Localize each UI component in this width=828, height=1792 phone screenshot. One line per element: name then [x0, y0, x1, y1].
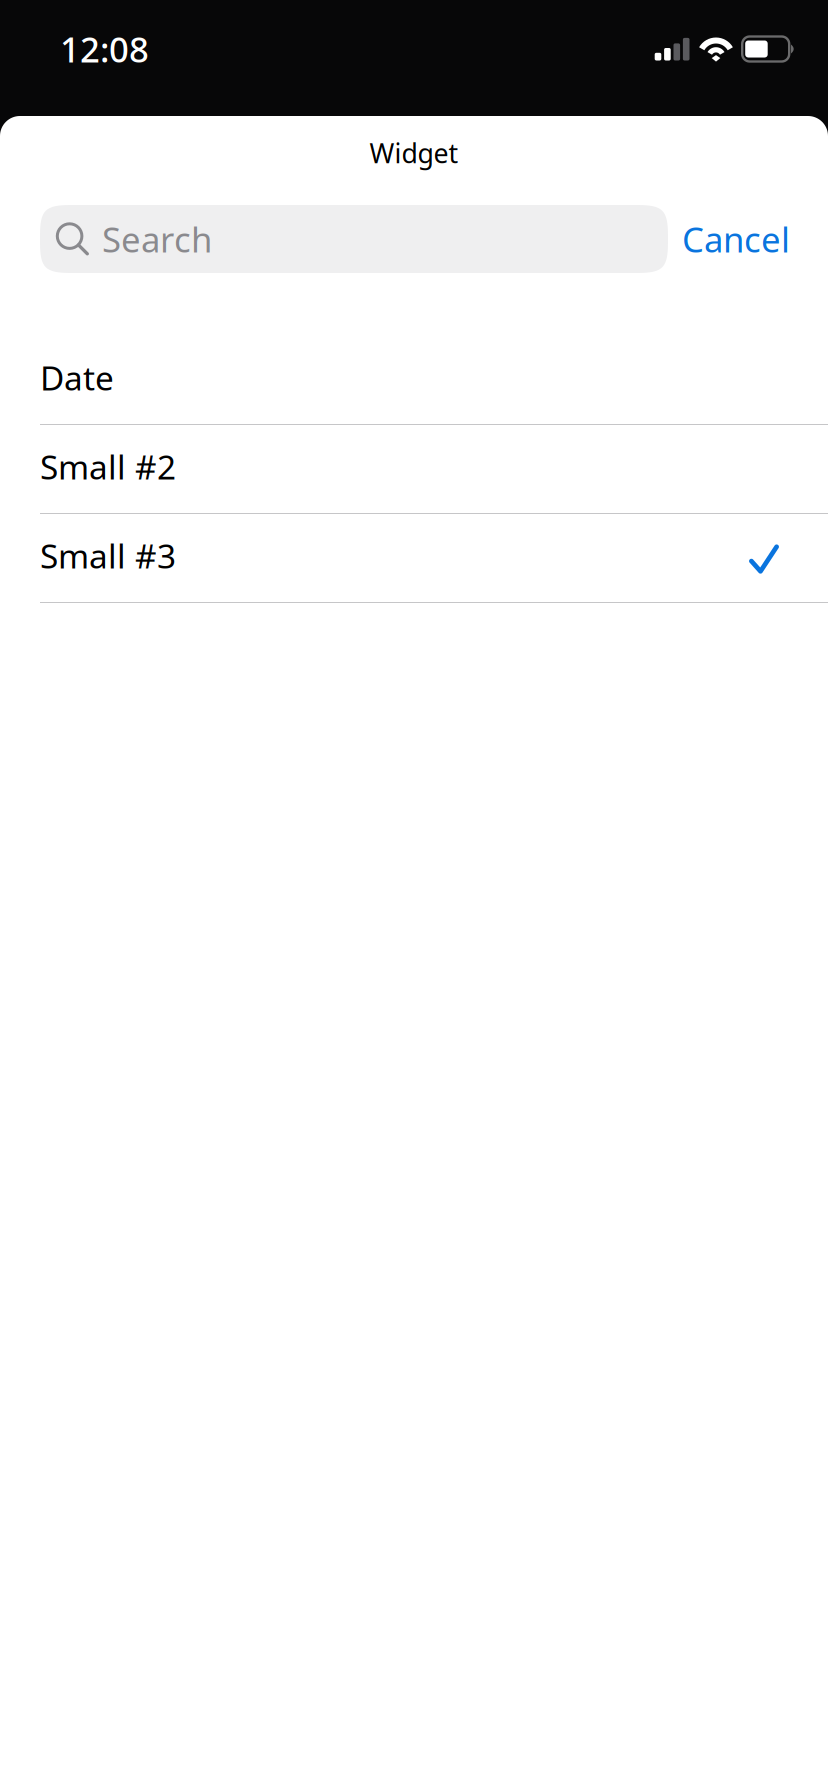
button[interactable]: Cancel	[675, 205, 797, 273]
button[interactable]: Small #3	[0, 514, 828, 603]
button[interactable]: Date	[0, 336, 828, 425]
staticText: 12:08	[60, 26, 149, 72]
staticText: Small #3	[40, 533, 176, 578]
staticText: Search	[102, 216, 212, 262]
staticText: Widget	[369, 135, 458, 171]
staticText: Date	[40, 355, 114, 400]
staticText: Small #2	[40, 444, 176, 489]
button[interactable]: Search	[40, 205, 668, 273]
button[interactable]: Small #2	[0, 425, 828, 514]
staticText: Cancel	[682, 216, 790, 262]
